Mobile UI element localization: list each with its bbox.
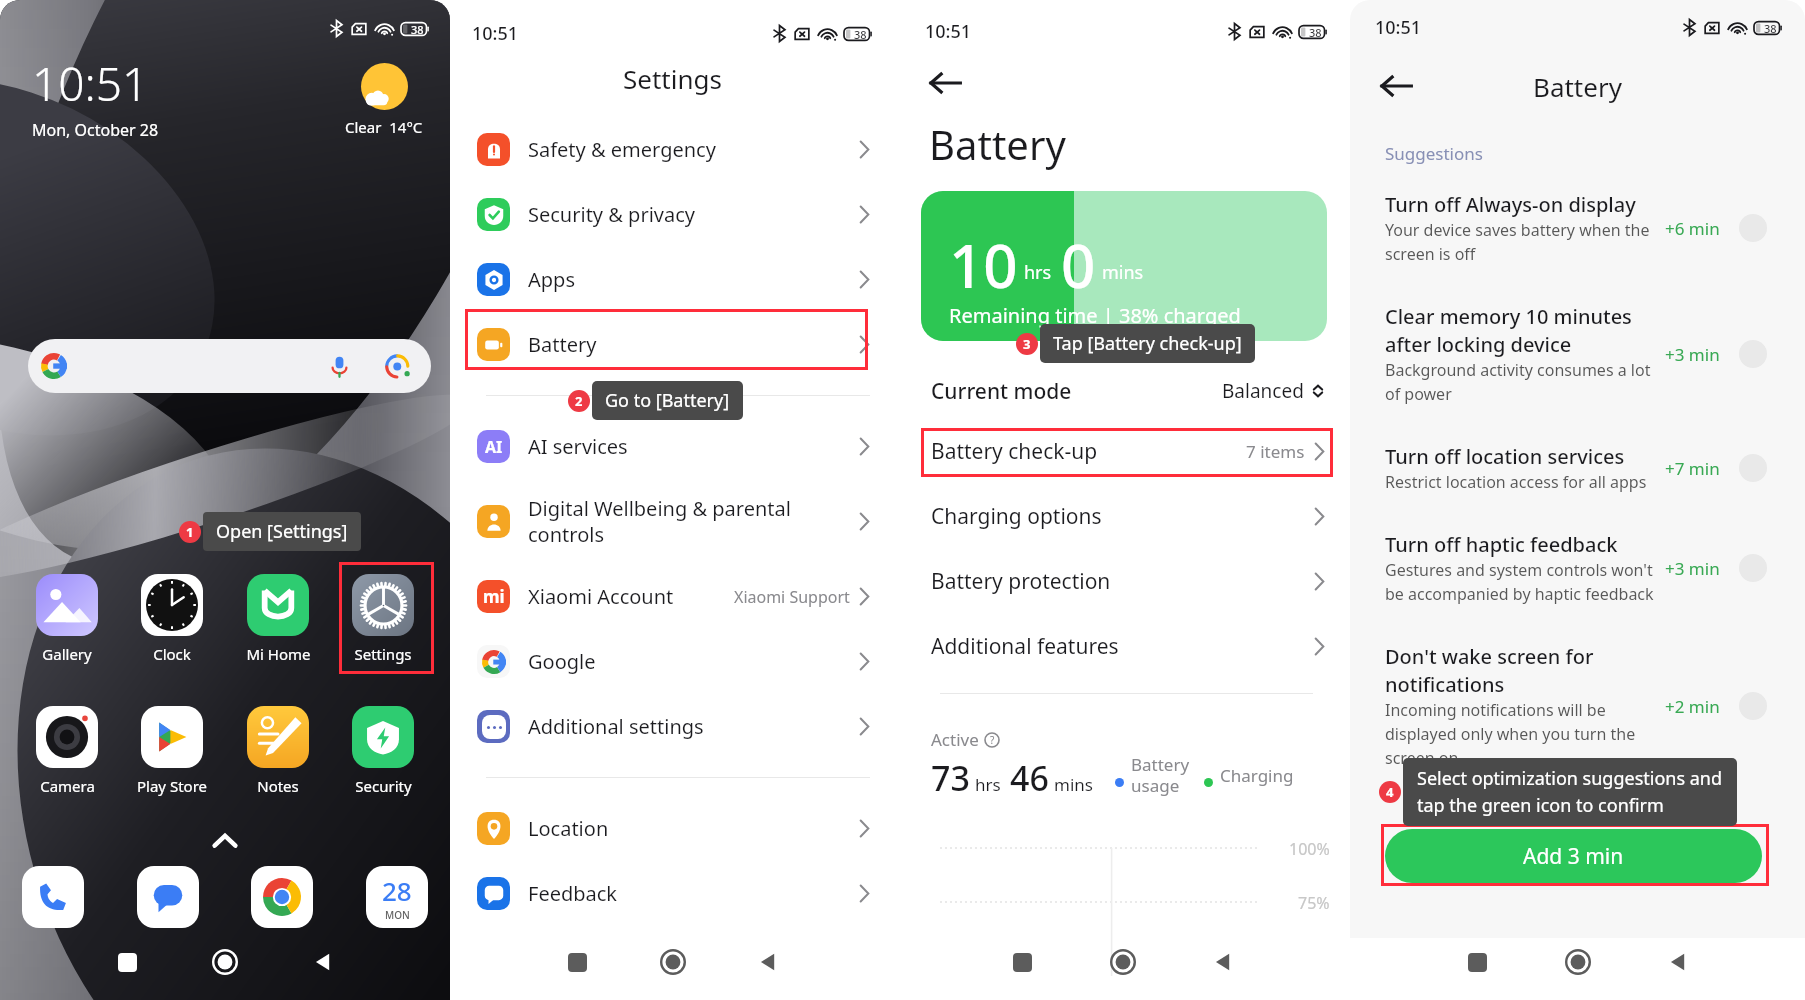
staticText: Mon, October 28 xyxy=(32,119,159,141)
button[interactable]: Back xyxy=(753,947,783,977)
staticText: Gestures and system controls won't be ac… xyxy=(1385,559,1654,605)
staticText: 38 xyxy=(1764,21,1777,36)
staticText: Location xyxy=(528,815,859,842)
staticText: Settings xyxy=(623,61,722,96)
button[interactable]: Digital Wellbeing & parental controls xyxy=(450,479,895,564)
button[interactable]: mi xyxy=(450,564,895,629)
staticText: Battery usage xyxy=(1131,753,1190,797)
button[interactable]: 10 xyxy=(921,191,1327,341)
button[interactable]: Security xyxy=(338,706,428,796)
button[interactable]: Don't wake screen for notifications xyxy=(1350,637,1805,801)
staticText: Select optimization suggestions and tap … xyxy=(1417,766,1723,817)
button[interactable]: Back xyxy=(1374,64,1418,108)
staticText: Charging xyxy=(1220,764,1294,787)
staticText: Your device saves battery when the scree… xyxy=(1385,219,1650,265)
staticText: Balanced xyxy=(1222,378,1304,404)
button[interactable]: Toggle suggestion xyxy=(1739,554,1767,582)
staticText: Active xyxy=(931,728,979,751)
staticText: Feedback xyxy=(528,880,859,907)
staticText: Additional features xyxy=(931,632,1314,661)
button[interactable]: Safety & emergency xyxy=(450,117,895,182)
staticText: Settings xyxy=(354,644,412,664)
button[interactable]: Clock xyxy=(127,574,217,664)
staticText: Xiaomi Support xyxy=(734,586,850,608)
button[interactable]: AI xyxy=(450,414,895,479)
staticText: 10:51 xyxy=(1375,15,1422,40)
button[interactable]: Recents xyxy=(1462,947,1492,977)
button[interactable]: Chrome xyxy=(251,866,313,928)
button[interactable]: Location xyxy=(450,796,895,861)
button[interactable] xyxy=(28,339,431,393)
button[interactable]: Toggle suggestion xyxy=(1739,340,1767,368)
button[interactable]: Messages xyxy=(137,866,199,928)
staticText: Mi Home xyxy=(246,644,311,664)
button[interactable]: Toggle suggestion xyxy=(1739,454,1767,482)
button[interactable]: Add 3 min xyxy=(1385,829,1762,883)
button[interactable]: Settings xyxy=(338,574,428,664)
staticText: 10 xyxy=(949,224,1018,306)
staticText: Google xyxy=(528,648,859,675)
staticText: Clear memory 10 minutes after locking de… xyxy=(1385,303,1632,358)
staticText: 10:51 xyxy=(925,19,972,44)
staticText: Gallery xyxy=(42,644,92,664)
staticText: Notes xyxy=(257,776,299,796)
staticText: 4 xyxy=(1386,783,1394,801)
button[interactable]: Home xyxy=(658,947,688,977)
button[interactable]: Camera xyxy=(22,706,112,796)
staticText: Incoming notifications will be displayed… xyxy=(1385,699,1636,769)
button[interactable]: Apps xyxy=(450,247,895,312)
staticText: mins xyxy=(1054,773,1093,796)
button[interactable]: Home xyxy=(210,947,240,977)
staticText: Go to [Battery] xyxy=(605,388,730,413)
button[interactable]: Phone xyxy=(22,866,84,928)
staticText: mins xyxy=(1102,260,1144,285)
staticText: Turn off Always-on display xyxy=(1385,191,1636,218)
button[interactable]: Calendar xyxy=(366,866,428,928)
staticText: hrs xyxy=(975,773,1001,796)
staticText: 28 xyxy=(382,873,412,908)
button[interactable]: Security & privacy xyxy=(450,182,895,247)
staticText: Remaining time | 38% charged xyxy=(949,302,1241,329)
staticText: Turn off haptic feedback xyxy=(1385,531,1618,558)
button[interactable]: Turn off location services xyxy=(1350,437,1805,525)
staticText: 38 xyxy=(854,27,867,42)
staticText: +2 min xyxy=(1665,695,1720,718)
button[interactable]: Toggle suggestion xyxy=(1739,214,1767,242)
button[interactable]: Battery check-up xyxy=(895,419,1350,484)
button[interactable]: Back xyxy=(1663,947,1693,977)
button[interactable]: Recents xyxy=(562,947,592,977)
button[interactable]: Clear memory 10 minutes after locking de… xyxy=(1350,297,1805,437)
staticText: AI services xyxy=(528,433,859,460)
staticText: 75% xyxy=(1298,892,1330,914)
staticText: Open [Settings] xyxy=(216,519,348,544)
button[interactable]: Battery xyxy=(450,312,895,377)
button[interactable]: Mi Home xyxy=(233,574,323,664)
button[interactable]: Turn off haptic feedback xyxy=(1350,525,1805,637)
staticText: Additional settings xyxy=(528,713,859,740)
button[interactable]: Play Store xyxy=(127,706,217,796)
staticText: mi xyxy=(483,585,505,608)
staticText: AI xyxy=(485,436,503,458)
staticText: 0 xyxy=(1061,224,1096,306)
button[interactable]: Additional features xyxy=(895,614,1350,679)
button[interactable]: Toggle suggestion xyxy=(1739,692,1767,720)
button[interactable]: Recents xyxy=(112,947,142,977)
button[interactable]: Gallery xyxy=(22,574,112,664)
button[interactable]: Google xyxy=(450,629,895,694)
staticText: 100% xyxy=(1289,838,1330,860)
button[interactable]: Back xyxy=(1208,947,1238,977)
button[interactable]: Feedback xyxy=(450,861,895,926)
button[interactable]: Battery protection xyxy=(895,549,1350,614)
staticText: Charging options xyxy=(931,502,1314,531)
button[interactable]: Back xyxy=(923,61,967,105)
staticText: +3 min xyxy=(1665,343,1720,366)
button[interactable]: Charging options xyxy=(895,484,1350,549)
button[interactable]: Recents xyxy=(1007,947,1037,977)
staticText: Safety & emergency xyxy=(528,136,859,163)
button[interactable]: Notes xyxy=(233,706,323,796)
button[interactable]: Home xyxy=(1563,947,1593,977)
button[interactable]: Turn off Always-on display xyxy=(1350,185,1805,297)
button[interactable]: Home xyxy=(1108,947,1138,977)
button[interactable]: Back xyxy=(308,947,338,977)
button[interactable]: Additional settings xyxy=(450,694,895,759)
